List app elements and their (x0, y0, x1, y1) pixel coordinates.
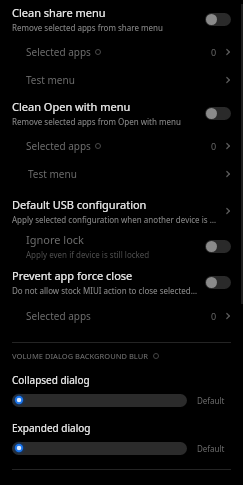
staticText: Selected apps (26, 45, 91, 59)
staticText: Ignore lock (26, 232, 84, 247)
button[interactable]: Test menu (0, 160, 243, 188)
staticText: Selected apps (26, 139, 91, 153)
staticText: Remove selected apps from share menu (12, 22, 163, 33)
staticText: Selected apps (26, 309, 91, 323)
staticText: Test menu (28, 167, 77, 181)
button[interactable]: Expanded dialog (0, 421, 243, 455)
button[interactable]: Ignore lock (0, 228, 243, 264)
staticText: Default (197, 443, 225, 454)
staticText: Expanded dialog (12, 421, 91, 435)
staticText: Default USB configuration (12, 197, 147, 212)
staticText: Remove selected apps from Open with menu (12, 116, 181, 127)
staticText: Collapsed dialog (12, 373, 90, 387)
staticText: 0 (211, 46, 217, 58)
button[interactable]: Test menu (0, 66, 243, 94)
button[interactable]: Clean Open with menu (0, 94, 243, 132)
button[interactable]: Default USB configuration (0, 194, 243, 228)
staticText: Test menu (26, 73, 75, 87)
staticText: Clean Open with menu (12, 99, 131, 114)
button[interactable]: Selected apps (0, 132, 243, 160)
staticText: 0 (211, 310, 217, 322)
staticText: Clean share menu (12, 5, 106, 20)
button[interactable]: Collapsed dialog (0, 373, 243, 407)
staticText: 0 (211, 140, 217, 152)
staticText: VOLUME DIALOG BACKGROUND BLUR (12, 351, 149, 361)
staticText: Default (197, 395, 225, 406)
button[interactable]: Selected apps (0, 300, 243, 332)
staticText: Apply selected configuration when anothe… (12, 214, 219, 225)
button[interactable]: Clean share menu (0, 0, 243, 38)
button[interactable]: Prevent app force close (0, 264, 243, 300)
button[interactable]: Selected apps (0, 38, 243, 66)
staticText: Do not allow stock MIUI action to close … (12, 285, 199, 296)
staticText: Apply even if device is still locked (26, 249, 150, 260)
staticText: Prevent app force close (12, 268, 133, 283)
